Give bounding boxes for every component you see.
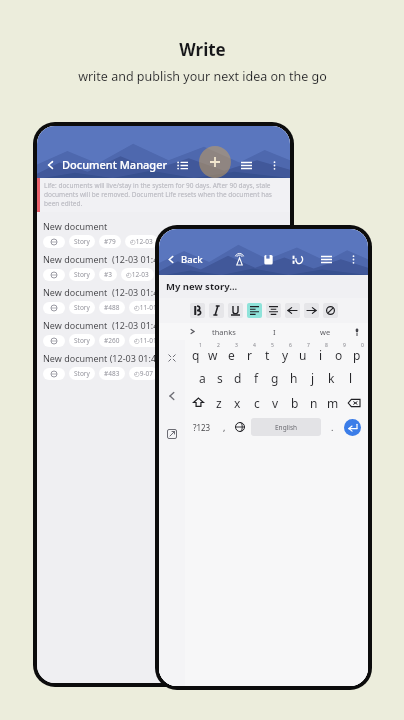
button[interactable]: Undo [289,251,305,267]
button[interactable]: Voice input [351,326,362,337]
staticText: m [327,395,339,411]
staticText: 8 [325,342,328,349]
button[interactable]: English [251,418,321,436]
button[interactable]: Align left [247,303,262,318]
button[interactable]: b [285,390,304,415]
button[interactable]: Resize [164,350,180,366]
button[interactable]: we [300,327,351,337]
button[interactable]: Align center [266,303,281,318]
staticText: Story [74,369,90,378]
button[interactable]: m [323,390,342,415]
staticText: d [234,370,242,386]
staticText: s [217,370,223,386]
button[interactable]: New document (12-03 01:4 [37,284,290,317]
button[interactable]: Change language [232,415,248,439]
staticText: Document Manager [62,157,168,172]
button[interactable]: n [304,390,323,415]
staticText: Story [74,270,90,279]
button[interactable]: Shift [187,390,210,415]
button[interactable]: 2 [204,340,222,365]
button[interactable]: g [265,365,284,390]
button[interactable]: Italic [209,303,224,318]
button[interactable]: Pop out [164,426,180,442]
button[interactable]: 7 [294,340,312,365]
staticText: New document (12-03 01:43 [43,352,162,364]
button[interactable]: New document (12-03 01:43 [37,350,290,383]
staticText: n [310,395,318,411]
button[interactable]: 5 [258,340,276,365]
button[interactable]: New document [37,218,290,251]
button[interactable]: k [322,365,341,390]
button[interactable]: a [193,365,211,390]
staticText: 3 [235,342,238,349]
button[interactable]: f [247,365,265,390]
staticText: 2 [217,342,220,349]
button[interactable]: Expand toolbar [187,326,198,337]
button[interactable]: Save [260,251,276,267]
button[interactable]: Enter [344,419,361,436]
button[interactable]: Add document [204,151,226,173]
button[interactable]: Bold [190,303,205,318]
staticText: 6 [289,342,292,349]
staticText: My new story... [166,280,238,293]
button[interactable]: 4 [240,340,258,365]
button[interactable]: 1 [187,340,204,365]
button[interactable]: Clear formatting [323,303,338,318]
button[interactable]: 3 [222,340,240,365]
staticText: f [254,370,259,386]
staticText: ◴11-01 [134,336,157,345]
staticText: New document (12-03 01:4 [43,286,159,298]
staticText: z [216,395,222,411]
button[interactable]: 8 [312,340,330,365]
button[interactable]: l [341,365,360,390]
button[interactable]: Back [164,388,180,404]
button[interactable]: x [228,390,247,415]
button[interactable]: More options [345,251,361,267]
button[interactable]: Publish [231,251,247,267]
button[interactable]: z [210,390,228,415]
button[interactable]: j [303,365,322,390]
button[interactable]: ?123 [188,415,216,439]
button[interactable]: 9 [330,340,348,365]
button[interactable]: , [216,415,232,439]
staticText: ◴12-03 [126,270,149,279]
staticText: ?123 [193,422,211,433]
button[interactable]: Menu [238,157,254,173]
staticText: 1 [199,342,202,349]
button[interactable]: Indent left [285,303,300,318]
button[interactable]: Underline [228,303,243,318]
button[interactable]: New document (12-03 01:4 [37,251,290,284]
staticText: ◴12-03 [130,237,153,246]
button[interactable]: d [229,365,247,390]
button[interactable]: Indent right [304,303,319,318]
button[interactable]: Menu [318,251,334,267]
button[interactable]: c [247,390,266,415]
staticText: c [254,395,260,411]
button[interactable]: thanks [198,327,249,337]
staticText: t [265,347,270,363]
button[interactable]: My new story... [159,275,368,298]
staticText: g [271,370,279,386]
button[interactable]: s [211,365,229,390]
button[interactable]: New document (12-03 01:4 [37,317,290,350]
button[interactable]: 6 [276,340,294,365]
button[interactable]: Backspace [342,390,366,415]
button[interactable]: More options [266,157,282,173]
staticText: Life: documents will live/stay in the sy… [44,181,286,208]
button[interactable]: Back [166,253,231,266]
staticText: h [290,370,298,386]
button[interactable]: h [284,365,303,390]
button[interactable]: 0 [348,340,366,365]
button[interactable]: I [249,327,300,337]
button[interactable]: List view [174,157,190,173]
staticText: q [192,347,200,363]
button[interactable]: . [324,415,340,439]
staticText: I [273,327,276,337]
button[interactable]: Document Manager [45,157,174,172]
staticText: Back [181,253,203,266]
staticText: Story [74,303,90,312]
staticText: p [353,347,361,363]
staticText: i [319,347,323,363]
staticText: English [275,423,298,432]
button[interactable]: v [266,390,285,415]
